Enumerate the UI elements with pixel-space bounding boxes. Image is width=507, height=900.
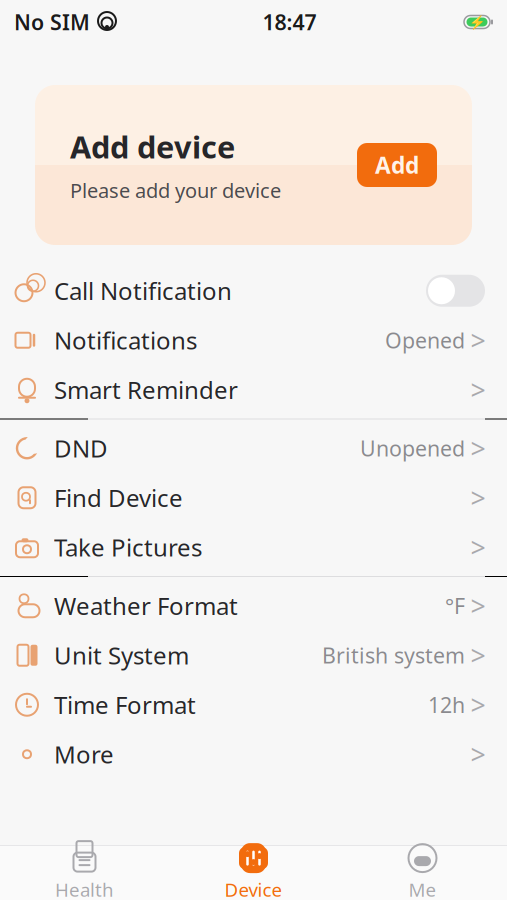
button[interactable]: Take Pictures [0, 522, 507, 572]
staticText: > [470, 372, 485, 407]
staticText: > [470, 529, 485, 565]
staticText: Add device [70, 126, 235, 167]
staticText: Health [55, 877, 114, 900]
staticText: ⚡ [468, 14, 485, 30]
staticText: Please add your device [70, 177, 281, 204]
button[interactable]: Find Device [0, 473, 507, 522]
staticText: Notifications [54, 324, 197, 356]
button[interactable]: Smart Reminder [0, 365, 507, 414]
staticText: > [470, 687, 485, 722]
staticText: °F [445, 592, 465, 620]
staticText: Call Notification [54, 275, 232, 307]
button[interactable]: DND [0, 423, 507, 473]
button[interactable]: Me [338, 836, 507, 900]
staticText: Me [408, 877, 436, 900]
staticText: Weather Format [54, 590, 238, 622]
button[interactable]: Weather Format [0, 581, 507, 630]
staticText: > [470, 480, 485, 515]
staticText: > [470, 637, 485, 673]
staticText: British system [322, 641, 465, 669]
button[interactable]: More [0, 729, 507, 779]
staticText: Opened [385, 326, 465, 354]
staticText: DND [54, 432, 108, 464]
button[interactable]: Call Notification [0, 266, 507, 315]
staticText: > [470, 736, 485, 772]
button[interactable]: Health [0, 836, 169, 900]
staticText: Smart Reminder [54, 374, 238, 406]
button[interactable]: Add device [0, 44, 507, 245]
staticText: Unit System [54, 639, 189, 671]
button[interactable]: Time Format [0, 680, 507, 729]
staticText: Time Format [54, 689, 196, 721]
staticText: > [470, 588, 485, 623]
staticText: Find Device [54, 482, 183, 514]
staticText: 18:47 [262, 8, 316, 36]
button[interactable]: Notifications [0, 315, 507, 365]
staticText: More [54, 738, 114, 770]
button[interactable]: Unit System [0, 630, 507, 680]
staticText: Unopened [360, 434, 465, 462]
button[interactable]: Device [169, 836, 338, 900]
staticText: > [470, 322, 485, 358]
staticText: Add [375, 150, 419, 180]
staticText: No SIM [14, 8, 90, 36]
staticText: 12h [428, 691, 465, 719]
staticText: Device [224, 877, 282, 900]
staticText: Take Pictures [54, 531, 202, 563]
staticText: > [470, 430, 485, 466]
